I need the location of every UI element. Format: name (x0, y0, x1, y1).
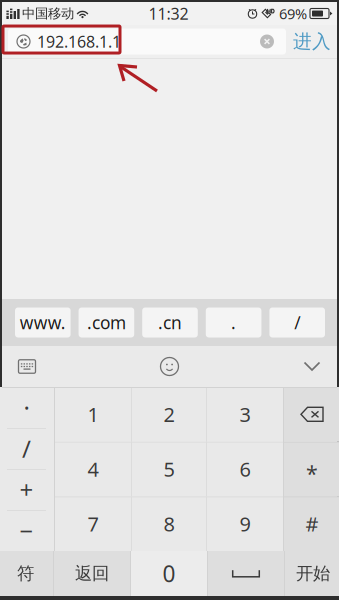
button[interactable]: 4 (55, 442, 131, 496)
button[interactable]: 1 (55, 387, 131, 442)
button[interactable]: / (269, 307, 325, 337)
button[interactable]: 8 (132, 496, 206, 551)
button[interactable]: 符 (0, 551, 53, 596)
staticText: 192.168.1.1 (37, 31, 121, 52)
staticText: 符 (17, 563, 34, 584)
staticText: # (305, 510, 318, 537)
staticText: / (294, 311, 300, 334)
staticText: − (19, 515, 33, 546)
staticText: 0 (162, 558, 175, 588)
button[interactable]: 0 (131, 551, 207, 596)
staticText: www. (20, 311, 66, 334)
button[interactable]: Emoji (146, 346, 192, 386)
staticText: 11:32 (148, 3, 188, 24)
staticText: 5 (163, 456, 174, 482)
staticText: + (19, 474, 33, 505)
button[interactable]: 3 (207, 387, 283, 442)
button[interactable]: .cn (142, 307, 198, 337)
staticText: 中国移动 (22, 5, 74, 22)
staticText: * (306, 459, 318, 487)
button[interactable]: www. (15, 307, 71, 337)
staticText: . (231, 311, 236, 334)
button[interactable]: · (0, 387, 54, 428)
button[interactable]: 5 (132, 442, 206, 496)
button[interactable]: 6 (207, 442, 283, 496)
button[interactable]: 192.168.1.1 (8, 28, 286, 54)
staticText: 1 (87, 401, 98, 428)
staticText: .com (87, 311, 126, 334)
button[interactable]: + (0, 469, 54, 510)
button[interactable]: 9 (207, 496, 283, 551)
staticText: 69% (279, 4, 307, 23)
button[interactable] (284, 387, 339, 442)
staticText: / (22, 433, 31, 464)
staticText: .cn (158, 311, 182, 334)
button[interactable]: # (284, 496, 339, 551)
staticText: 返回 (75, 563, 109, 584)
button[interactable] (208, 551, 284, 596)
button[interactable]: .com (79, 307, 134, 337)
button[interactable]: Switch keyboard (4, 346, 50, 386)
staticText: 6 (239, 456, 250, 482)
staticText: 7 (87, 510, 98, 537)
button[interactable]: * (284, 442, 339, 496)
staticText: 9 (239, 510, 250, 537)
staticText: 4 (87, 456, 98, 482)
staticText: 8 (163, 510, 174, 537)
button[interactable]: / (0, 428, 54, 469)
button[interactable]: − (0, 510, 54, 551)
button[interactable]: 2 (132, 387, 206, 442)
button[interactable]: . (206, 307, 261, 337)
staticText: 进入 (293, 30, 331, 53)
button[interactable]: 7 (55, 496, 131, 551)
staticText: 3 (239, 401, 250, 428)
staticText: 2 (163, 401, 174, 428)
button[interactable]: 开始 (285, 551, 339, 596)
button[interactable]: 进入 (290, 28, 334, 54)
button[interactable]: 返回 (54, 551, 130, 596)
staticText: · (23, 392, 29, 423)
staticText: 开始 (296, 563, 330, 584)
button[interactable]: Hide keyboard (289, 346, 335, 386)
